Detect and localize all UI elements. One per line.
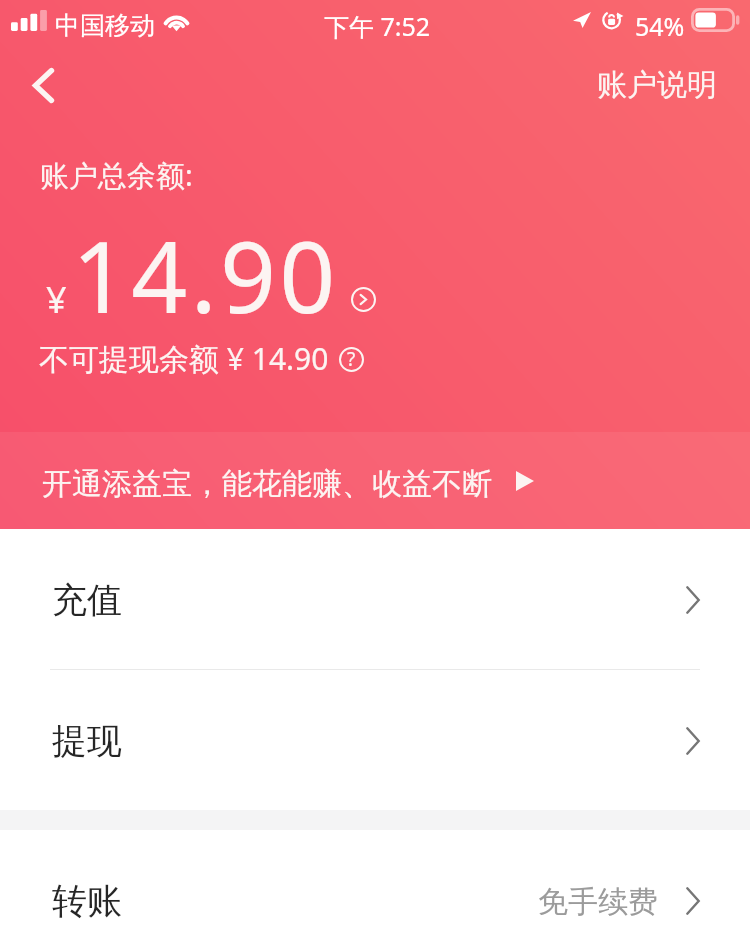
button[interactable]: Back xyxy=(1,43,85,127)
button[interactable]: 转账 xyxy=(0,830,750,939)
staticText: 开通添益宝，能花能赚、收益不断 xyxy=(42,465,492,503)
staticText: 充值 xyxy=(52,578,122,622)
staticText: 中国移动 xyxy=(55,10,155,41)
staticText: 14.90 xyxy=(72,208,339,341)
staticText: 账户总余额: xyxy=(40,155,193,195)
staticText: 转账 xyxy=(52,879,122,923)
staticText: 不可提现余额 ¥ 14.90 xyxy=(39,338,329,379)
staticText: 下午 7:52 xyxy=(324,9,431,43)
button[interactable]: Help xyxy=(333,341,369,377)
staticText: 54% xyxy=(635,9,685,43)
button[interactable]: 账户说明 xyxy=(561,46,750,124)
staticText: 账户说明 xyxy=(597,66,717,104)
button[interactable]: Balance detail xyxy=(345,281,381,317)
staticText: 提现 xyxy=(52,719,122,763)
button[interactable]: 开通添益宝，能花能赚、收益不断 xyxy=(0,432,750,529)
button[interactable]: 充值 xyxy=(0,529,750,669)
button[interactable]: 提现 xyxy=(0,670,750,810)
staticText: ? xyxy=(347,346,356,372)
staticText: 免手续费 xyxy=(538,883,658,921)
staticText: ¥ xyxy=(46,275,67,324)
